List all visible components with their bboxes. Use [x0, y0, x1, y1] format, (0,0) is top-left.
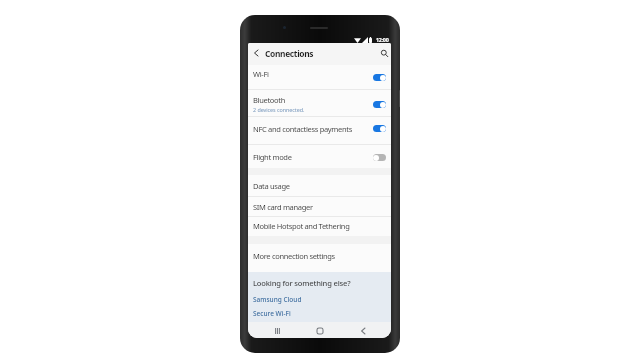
staticText: Wi-Fi	[253, 69, 269, 79]
staticText: Connections	[265, 48, 314, 59]
button[interactable]: Data usage	[248, 175, 391, 196]
staticText: Looking for something else?	[253, 278, 351, 288]
button[interactable]: Recent apps	[271, 325, 283, 336]
button[interactable]: Wi-Fi	[248, 60, 391, 87]
button[interactable]: Search	[378, 48, 390, 60]
button[interactable]: SIM card manager	[248, 196, 391, 217]
staticText: SIM card manager	[253, 202, 313, 212]
staticText: Data usage	[253, 181, 290, 191]
staticText: 2 devices connected.	[253, 106, 305, 113]
button[interactable]: Switch on	[373, 125, 386, 132]
staticText: Flight mode	[253, 152, 292, 162]
staticText: Bluetooth	[253, 95, 285, 105]
button[interactable]: More connection settings	[248, 245, 391, 266]
button[interactable]: Home	[314, 325, 326, 336]
staticText: NFC and contactless payments	[253, 124, 352, 134]
button[interactable]: Switch on	[373, 74, 386, 81]
button[interactable]: Switch off	[373, 154, 386, 161]
button[interactable]: Samsung Cloud	[253, 295, 302, 304]
button[interactable]: Mobile Hotspot and Tethering	[248, 215, 391, 236]
staticText: 12:00	[376, 36, 389, 43]
button[interactable]: Secure Wi-Fi	[253, 309, 291, 318]
button[interactable]: Flight mode	[248, 144, 391, 170]
button[interactable]: Back	[357, 325, 369, 336]
button[interactable]: NFC and contactless payments	[248, 116, 391, 142]
staticText: More connection settings	[253, 251, 335, 261]
staticText: Mobile Hotspot and Tethering	[253, 221, 350, 231]
button[interactable]: Back	[250, 46, 261, 62]
button[interactable]: Switch on	[373, 101, 386, 108]
button[interactable]: Bluetooth	[248, 89, 391, 119]
